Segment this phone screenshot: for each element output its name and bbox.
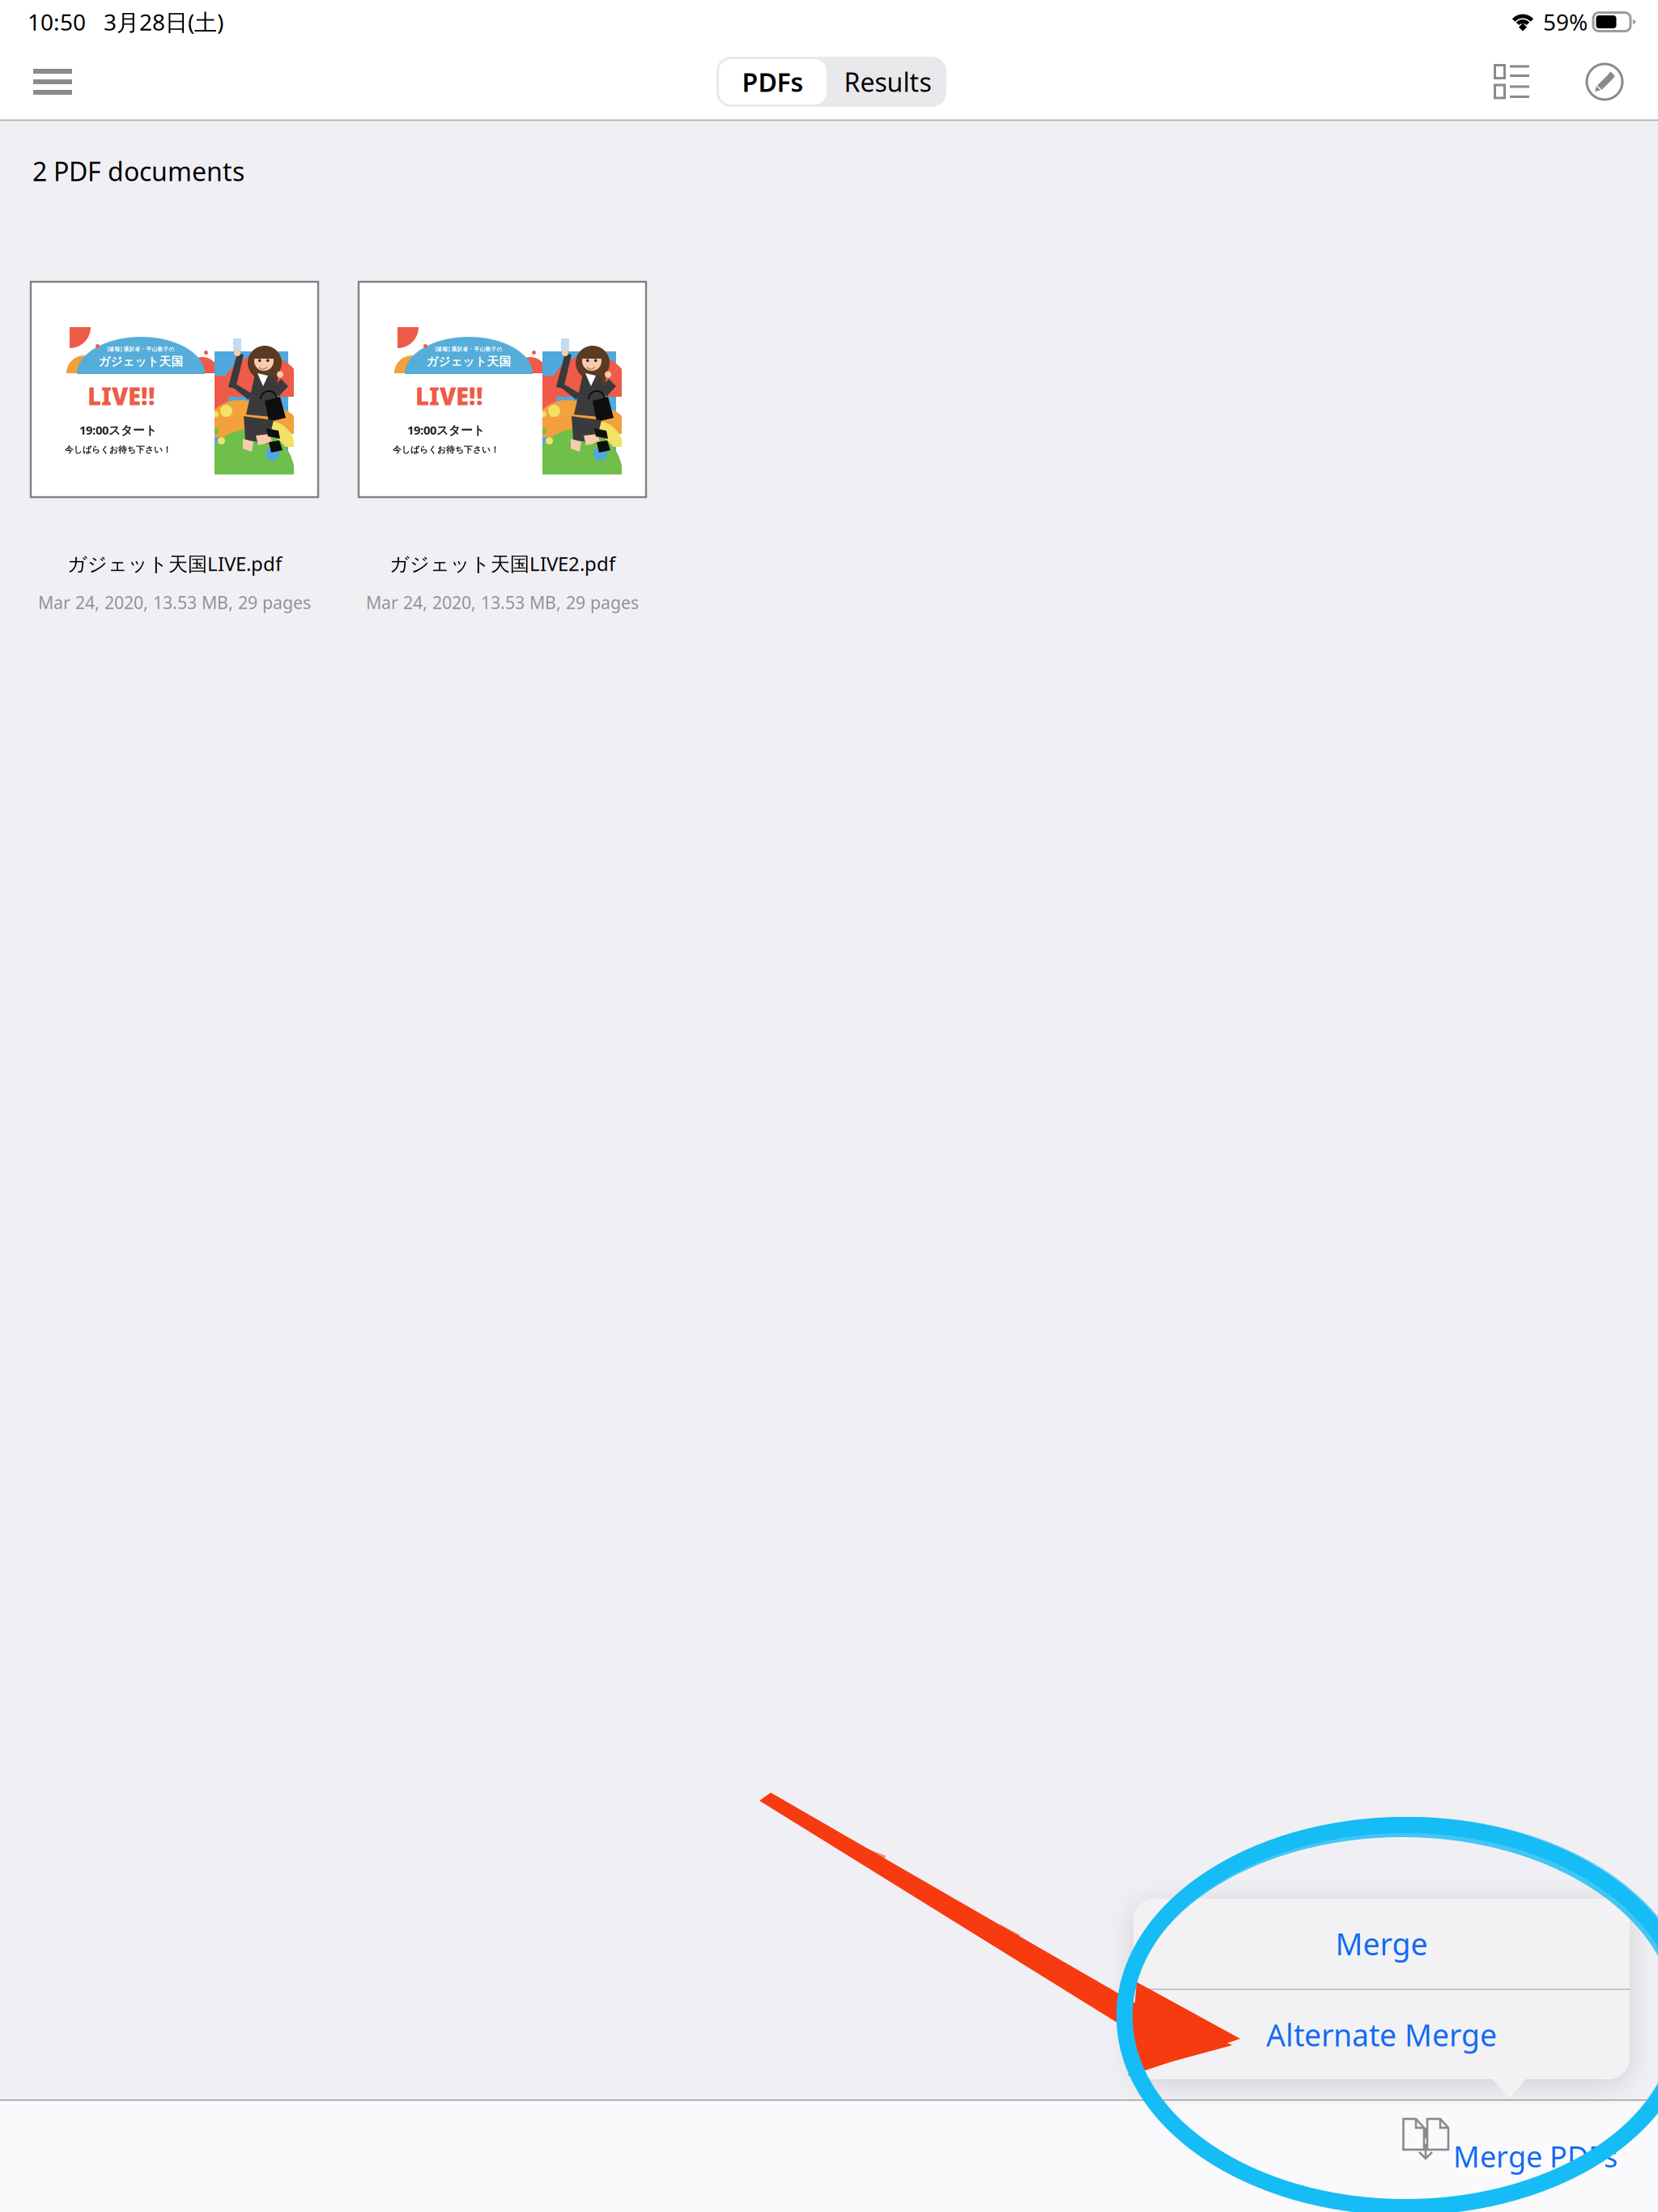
staticText: 今しばらくお待ち下さい！ xyxy=(393,444,500,455)
staticText: 今しばらくお待ち下さい！ xyxy=(65,444,172,455)
staticText: Mar 24, 2020, 13.53 MB, 29 pages xyxy=(38,591,311,614)
staticText: Results xyxy=(844,65,931,99)
staticText: Merge PDFs xyxy=(1453,2137,1618,2175)
button[interactable]: Menu xyxy=(21,51,84,113)
button[interactable]: Results xyxy=(829,57,946,107)
staticText: Merge xyxy=(1335,1924,1428,1964)
staticText: 19:00スタート xyxy=(79,422,157,438)
staticText: [速報] 通訳者・平山敦子の xyxy=(107,345,174,353)
staticText: ガジェット天国 xyxy=(426,354,511,369)
staticText: Mar 24, 2020, 13.53 MB, 29 pages xyxy=(366,591,639,614)
staticText: LIVE!! xyxy=(87,380,155,412)
staticText: ガジェット天国LIVE2.pdf xyxy=(389,551,615,576)
staticText: [速報] 通訳者・平山敦子の xyxy=(435,345,502,353)
button[interactable]: PDFs xyxy=(716,57,829,107)
button[interactable]: Alternate Merge xyxy=(1133,1990,1630,2079)
staticText: 10:50 xyxy=(28,7,86,37)
staticText: Alternate Merge xyxy=(1266,2015,1497,2055)
staticText: 2 PDF documents xyxy=(32,154,244,188)
staticText: ガジェット天国LIVE.pdf xyxy=(67,551,282,576)
button[interactable]: Merge PDFs xyxy=(1391,2123,1629,2189)
staticText: 59% xyxy=(1543,7,1588,37)
staticText: 3月28日(土) xyxy=(104,7,223,37)
button[interactable]: Edit xyxy=(1577,49,1632,114)
staticText: 19:00スタート xyxy=(407,422,485,438)
button[interactable]: [速報] 通訳者・平山敦子の xyxy=(0,282,379,638)
button[interactable]: List view xyxy=(1482,49,1541,114)
button[interactable]: [速報] 通訳者・平山敦子の xyxy=(298,282,707,638)
button[interactable]: Merge xyxy=(1133,1899,1630,1989)
staticText: PDFs xyxy=(742,65,803,99)
staticText: LIVE!! xyxy=(415,380,483,412)
staticText: ガジェット天国 xyxy=(98,354,183,369)
